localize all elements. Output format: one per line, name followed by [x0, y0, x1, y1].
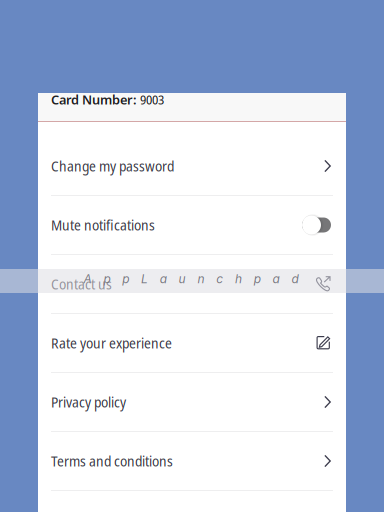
button[interactable]: Privacy policy	[38, 373, 346, 432]
staticText: Terms and conditions	[51, 451, 173, 471]
button[interactable]: Rate your experience	[38, 314, 346, 373]
button[interactable]: Terms and conditions	[38, 432, 346, 491]
staticText: Rate your experience	[51, 333, 172, 353]
staticText: Change my password	[51, 156, 174, 176]
staticText: Privacy policy	[51, 392, 126, 412]
staticText: AppLaunchpad	[84, 272, 298, 286]
staticText: Mute notifications	[51, 215, 155, 235]
button[interactable]: Contact us	[38, 255, 346, 314]
staticText: Contact us	[51, 274, 112, 294]
staticText: 9003	[140, 91, 164, 108]
button[interactable]: Change my password	[38, 137, 346, 196]
button[interactable]: Mute notifications	[38, 196, 346, 255]
staticText: Card Number:	[51, 91, 140, 108]
